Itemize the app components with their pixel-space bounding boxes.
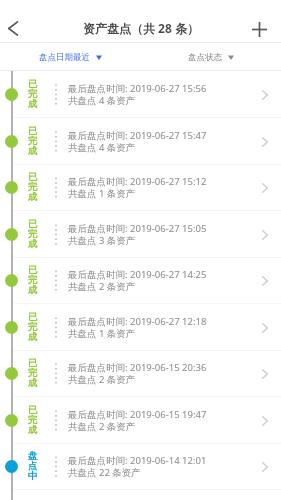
staticText: 已: [28, 171, 38, 183]
staticText: 成: [28, 377, 38, 389]
staticText: 最后盘点时间: 2019-06-27 12:18 共盘点 1 条资产: [68, 315, 207, 340]
button[interactable]: 已: [0, 164, 281, 211]
button[interactable]: 已: [0, 350, 281, 397]
staticText: 成: [28, 331, 38, 343]
button[interactable]: 盘点状态: [140, 43, 281, 70]
button[interactable]: 盘点日期最近: [0, 43, 140, 70]
staticText: 已: [28, 125, 38, 137]
staticText: 最后盘点时间: 2019-06-27 14:25 共盘点 2 条资产: [68, 268, 207, 293]
staticText: 完: [28, 321, 38, 333]
staticText: 已: [28, 218, 38, 230]
staticText: 成: [28, 98, 38, 110]
staticText: 已: [28, 357, 38, 369]
staticText: 点: [28, 460, 38, 472]
staticText: 已: [28, 404, 38, 416]
button[interactable]: 已: [0, 211, 281, 258]
staticText: 完: [28, 367, 38, 379]
staticText: 最后盘点时间: 2019-06-15 20:36 共盘点 2 条资产: [68, 361, 207, 386]
staticText: 成: [28, 145, 38, 157]
button[interactable]: 已: [0, 118, 281, 165]
button[interactable]: 已: [0, 304, 281, 351]
staticText: 完: [28, 228, 38, 240]
staticText: 盘点日期最近: [39, 52, 90, 63]
button[interactable]: 盘: [0, 443, 281, 490]
staticText: 成: [28, 238, 38, 250]
staticText: 最后盘点时间: 2019-06-27 15:56 共盘点 4 条资产: [68, 82, 207, 107]
staticText: 完: [28, 88, 38, 100]
button[interactable]: 已: [0, 397, 281, 444]
button[interactable]: Add: [241, 11, 277, 47]
staticText: 最后盘点时间: 2019-06-27 15:47 共盘点 4 条资产: [68, 129, 207, 154]
staticText: 最后盘点时间: 2019-06-27 15:12 共盘点 1 条资产: [68, 175, 207, 200]
staticText: 最后盘点时间: 2019-06-14 12:01 共盘点 22 条资产: [68, 454, 207, 479]
staticText: 成: [28, 191, 38, 203]
button[interactable]: Back: [0, 11, 30, 45]
staticText: 资产盘点（共 28 条）: [83, 20, 199, 36]
staticText: 最后盘点时间: 2019-06-27 15:05 共盘点 3 条资产: [68, 222, 207, 247]
staticText: 完: [28, 414, 38, 426]
staticText: 盘: [28, 450, 38, 462]
staticText: 已: [28, 78, 38, 90]
button[interactable]: 已: [0, 71, 281, 118]
staticText: 完: [28, 274, 38, 286]
button[interactable]: 已: [0, 257, 281, 304]
staticText: 最后盘点时间: 2019-06-15 19:47 共盘点 2 条资产: [68, 408, 207, 433]
staticText: 中: [28, 470, 38, 482]
staticText: 已: [28, 264, 38, 276]
staticText: 完: [28, 181, 38, 193]
staticText: 盘点状态: [188, 52, 222, 63]
staticText: 成: [28, 424, 38, 436]
staticText: 已: [28, 311, 38, 323]
staticText: 成: [28, 284, 38, 296]
staticText: 完: [28, 135, 38, 147]
